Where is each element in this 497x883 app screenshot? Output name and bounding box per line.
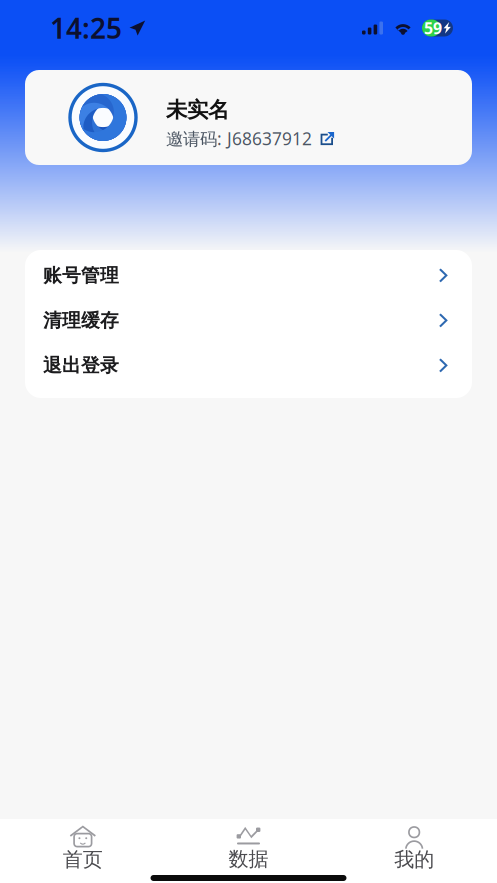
staticText: 退出登录 (43, 354, 119, 377)
button[interactable]: 退出登录 (25, 343, 472, 388)
button[interactable]: 我的 (331, 819, 497, 873)
staticText: 我的 (394, 847, 434, 872)
staticText: 14:25 (50, 9, 122, 47)
staticText: 账号管理 (43, 264, 119, 287)
staticText: 未实名 (166, 97, 229, 123)
staticText: 首页 (63, 847, 103, 872)
staticText: 59 (424, 17, 442, 39)
staticText: 邀请码: J68637912 (166, 127, 312, 150)
button[interactable]: 账号管理 (25, 253, 472, 298)
button[interactable]: 清理缓存 (25, 298, 472, 343)
button[interactable]: 未实名 (25, 70, 472, 165)
button[interactable]: 首页 (0, 819, 166, 873)
staticText: 清理缓存 (43, 309, 119, 332)
staticText: 数据 (228, 847, 268, 871)
button[interactable]: 数据 (166, 819, 331, 873)
